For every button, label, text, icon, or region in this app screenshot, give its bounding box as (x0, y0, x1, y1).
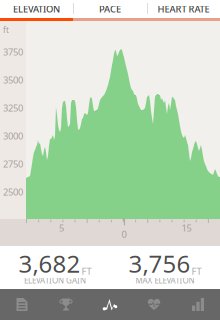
staticText: 3250 (3, 102, 23, 114)
button[interactable]: Record (88, 289, 132, 320)
staticText: 3000 (3, 130, 23, 142)
staticText: 5 (59, 222, 64, 234)
staticText: FT (81, 265, 91, 277)
staticText: PACE (99, 3, 121, 15)
button[interactable]: HEART RATE (147, 0, 220, 21)
button[interactable]: PACE (73, 0, 147, 21)
staticText: MAX ELEVATION (135, 275, 194, 286)
staticText: ELEVATION (13, 3, 60, 15)
staticText: ELEVATION GAIN (24, 275, 86, 286)
staticText: 3,682 (18, 248, 80, 279)
staticText: 2750 (3, 158, 23, 170)
staticText: FT (191, 265, 201, 277)
button[interactable]: Activity Feed (0, 289, 44, 320)
staticText: ft (3, 25, 9, 35)
staticText: 3,756 (128, 248, 190, 279)
button[interactable]: Challenges (44, 289, 88, 320)
staticText: 2500 (3, 186, 23, 198)
staticText: 15 (181, 222, 191, 234)
staticText: 3500 (3, 74, 23, 86)
staticText: HEART RATE (157, 3, 209, 15)
button[interactable]: ELEVATION (0, 0, 73, 21)
button[interactable]: Heart Rate (132, 289, 176, 320)
button[interactable]: Statistics (176, 289, 220, 320)
staticText: 10 (121, 216, 126, 240)
staticText: 3750 (3, 46, 23, 58)
